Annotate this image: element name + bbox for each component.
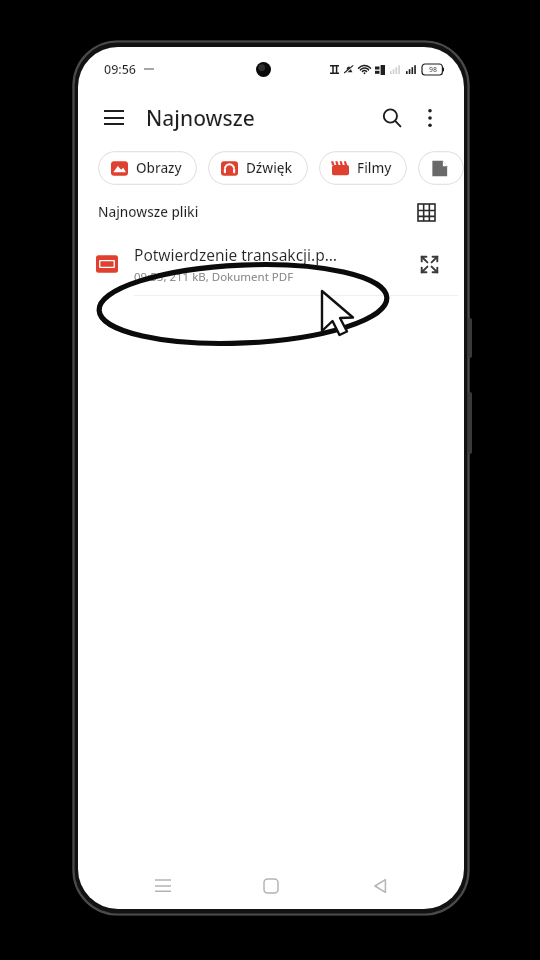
button[interactable]: Grid view: [410, 196, 442, 228]
button[interactable]: More options: [412, 100, 448, 136]
button[interactable]: Recents: [139, 863, 187, 909]
staticText: Najnowsze pliki: [98, 203, 199, 221]
button[interactable]: Home: [247, 863, 295, 909]
button[interactable]: Search: [372, 98, 412, 138]
staticText: Filmy: [357, 159, 392, 177]
staticText: Obrazy: [136, 159, 182, 177]
staticText: 09:56: [104, 61, 137, 78]
button[interactable]: Menu: [94, 98, 134, 138]
button[interactable]: Dźwięk: [208, 151, 308, 185]
button[interactable]: Expand: [412, 247, 446, 281]
staticText: Potwierdzenie transakcji.p…: [134, 244, 338, 265]
button[interactable]: Potwierdzenie transakcji.p…: [78, 233, 464, 295]
staticText: 98: [429, 65, 438, 75]
staticText: 09:55, 211 kB, Dokument PDF: [134, 269, 294, 285]
button[interactable]: [418, 151, 464, 185]
button[interactable]: Filmy: [319, 151, 407, 185]
button[interactable]: Obrazy: [98, 151, 197, 185]
staticText: Najnowsze: [146, 104, 255, 133]
staticText: Dźwięk: [246, 159, 293, 177]
button[interactable]: Back: [356, 863, 404, 909]
